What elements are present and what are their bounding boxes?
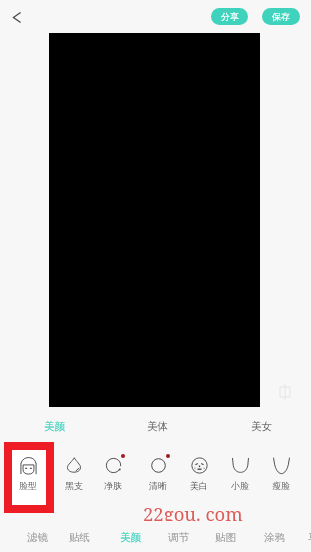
button[interactable]: 美颜 <box>110 528 150 546</box>
button[interactable]: 分享 <box>211 8 248 25</box>
staticText: 马赛 <box>308 531 311 544</box>
button[interactable]: 美白 <box>178 450 220 496</box>
button[interactable]: 美颜 <box>32 415 76 437</box>
staticText: 美颜 <box>120 531 141 544</box>
button[interactable]: 瘦脸 <box>260 450 302 496</box>
staticText: 瘦脸 <box>272 480 290 491</box>
staticText: 分享 <box>221 11 239 22</box>
button[interactable]: 小脸 <box>219 450 261 496</box>
staticText: 滤镜 <box>27 531 48 544</box>
staticText: 美体 <box>147 420 168 433</box>
staticText: 调节 <box>168 531 189 544</box>
button[interactable]: Compare <box>275 382 295 402</box>
staticText: 保存 <box>272 11 290 22</box>
button[interactable]: 美女 <box>239 415 283 437</box>
staticText: 22gou. com <box>143 501 243 521</box>
staticText: 贴图 <box>215 531 236 544</box>
button[interactable]: 滤镜 <box>17 528 57 546</box>
staticText: 贴纸 <box>69 531 90 544</box>
button[interactable]: 清晰 <box>137 450 179 496</box>
staticText: 涂鸦 <box>264 531 285 544</box>
button[interactable]: 贴纸 <box>59 528 99 546</box>
button[interactable]: 调节 <box>158 528 198 546</box>
button[interactable]: 黑支 <box>53 450 95 496</box>
staticText: 黑支 <box>65 480 83 491</box>
button[interactable]: 美体 <box>135 415 179 437</box>
staticText: 净肤 <box>104 480 122 491</box>
staticText: 小脸 <box>231 480 249 491</box>
staticText: 脸型 <box>19 480 37 491</box>
button[interactable]: 净肤 <box>92 450 134 496</box>
button[interactable]: 马赛 <box>298 528 311 546</box>
staticText: 清晰 <box>149 480 167 491</box>
button[interactable]: 保存 <box>262 8 300 25</box>
staticText: 美颜 <box>44 420 65 433</box>
button[interactable]: Back <box>4 4 30 30</box>
button[interactable]: 涂鸦 <box>254 528 294 546</box>
staticText: 美白 <box>190 480 208 491</box>
button[interactable]: 脸型 <box>7 450 49 496</box>
button[interactable]: 贴图 <box>205 528 245 546</box>
staticText: 美女 <box>251 420 272 433</box>
